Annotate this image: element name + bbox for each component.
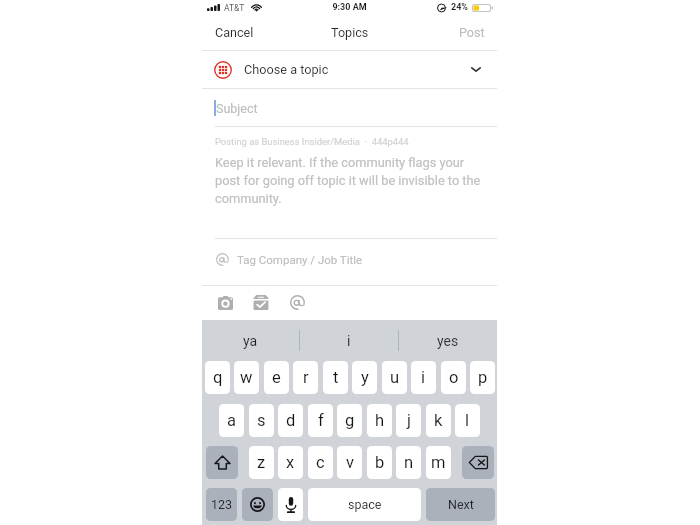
- staticText: Choose a topic: [244, 62, 329, 77]
- button[interactable]: o: [441, 361, 466, 394]
- button[interactable]: r: [293, 361, 318, 394]
- staticText: i: [421, 368, 426, 387]
- staticText: AT&T: [224, 3, 245, 13]
- button[interactable]: del: [462, 446, 494, 479]
- button[interactable]: n: [396, 446, 421, 479]
- button[interactable]: mic: [278, 488, 303, 521]
- button[interactable]: y: [352, 361, 377, 394]
- staticText: u: [390, 368, 400, 387]
- button[interactable]: m: [426, 446, 451, 479]
- button[interactable]: k: [426, 404, 451, 437]
- button[interactable]: i: [411, 361, 436, 394]
- staticText: Keep it relevant. If the community flags…: [215, 155, 486, 207]
- button[interactable]: g: [337, 404, 362, 437]
- staticText: 123: [211, 497, 233, 512]
- button[interactable]: Cancel: [202, 20, 267, 45]
- staticText: Tag Company / Job Title: [237, 253, 363, 266]
- staticText: e: [272, 368, 281, 387]
- button[interactable]: c: [308, 446, 333, 479]
- button[interactable]: a: [219, 404, 244, 437]
- staticText: n: [404, 453, 414, 472]
- button[interactable]: Next: [426, 488, 495, 521]
- button[interactable]: x: [278, 446, 303, 479]
- button[interactable]: s: [249, 404, 274, 437]
- button[interactable]: Mention: [290, 295, 305, 310]
- staticText: y: [361, 368, 369, 387]
- staticText: r: [303, 368, 309, 387]
- staticText: t: [333, 368, 339, 387]
- staticText: p: [478, 368, 488, 387]
- button[interactable]: Attach job: [253, 295, 269, 310]
- button[interactable]: p: [470, 361, 495, 394]
- staticText: Subject: [216, 101, 258, 116]
- button[interactable]: z: [249, 446, 274, 479]
- staticText: k: [434, 411, 443, 430]
- staticText: s: [257, 411, 266, 430]
- staticText: 24%: [451, 2, 468, 13]
- button[interactable]: u: [382, 361, 407, 394]
- staticText: d: [286, 411, 296, 430]
- staticText: x: [286, 453, 295, 472]
- button[interactable]: t: [323, 361, 348, 394]
- staticText: w: [240, 368, 253, 387]
- button[interactable]: b: [367, 446, 392, 479]
- staticText: ya: [243, 333, 258, 349]
- button[interactable]: q: [205, 361, 230, 394]
- button[interactable]: shift: [206, 446, 238, 479]
- button[interactable]: l: [455, 404, 480, 437]
- staticText: g: [345, 411, 355, 430]
- staticText: c: [316, 453, 325, 472]
- button[interactable]: j: [396, 404, 421, 437]
- staticText: yes: [437, 333, 459, 349]
- button[interactable]: i: [300, 320, 398, 361]
- button[interactable]: emoji: [242, 488, 273, 521]
- staticText: a: [227, 411, 236, 430]
- button[interactable]: yes: [399, 320, 497, 361]
- staticText: Next: [448, 497, 474, 512]
- button[interactable]: h: [367, 404, 392, 437]
- button[interactable]: Choose a topic: [202, 51, 497, 88]
- button[interactable]: 123: [206, 488, 237, 521]
- button[interactable]: d: [278, 404, 303, 437]
- staticText: b: [375, 453, 385, 472]
- staticText: v: [346, 453, 354, 472]
- button[interactable]: Post: [447, 20, 497, 45]
- staticText: j: [407, 411, 411, 430]
- staticText: space: [348, 497, 382, 512]
- button[interactable]: e: [264, 361, 289, 394]
- staticText: Cancel: [215, 25, 254, 40]
- staticText: Post: [459, 25, 485, 40]
- button[interactable]: Add photo: [218, 296, 233, 310]
- staticText: h: [375, 411, 385, 430]
- staticText: l: [465, 411, 470, 430]
- button[interactable]: v: [337, 446, 362, 479]
- button[interactable]: w: [234, 361, 259, 394]
- staticText: o: [449, 368, 459, 387]
- button[interactable]: ya: [202, 320, 299, 361]
- staticText: Topics: [331, 25, 369, 40]
- staticText: q: [213, 368, 223, 387]
- staticText: z: [257, 453, 266, 472]
- staticText: 9:30 AM: [202, 2, 497, 13]
- staticText: m: [431, 453, 446, 472]
- staticText: i: [347, 333, 351, 349]
- button[interactable]: space: [308, 488, 421, 521]
- button[interactable]: f: [308, 404, 333, 437]
- staticText: Posting as Business Insider/Media · 444p…: [215, 136, 409, 147]
- button[interactable]: Tag Company / Job Title: [202, 239, 497, 285]
- staticText: f: [318, 411, 324, 430]
